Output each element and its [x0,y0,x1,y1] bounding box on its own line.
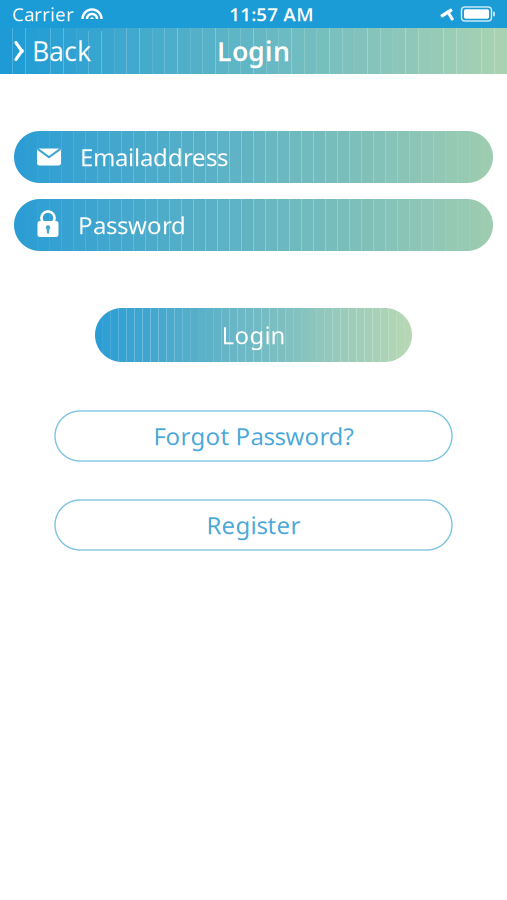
button[interactable]: Password [14,199,493,251]
staticText: Register [206,509,300,541]
staticText: Login [217,33,290,69]
staticText: Emailaddress [80,141,228,173]
staticText: 11:57 AM [229,2,313,26]
button[interactable]: Forgot Password? [55,411,452,461]
staticText: Forgot Password? [153,420,353,452]
staticText: Back [32,33,91,69]
staticText: Carrier [12,2,74,26]
button[interactable]: Register [55,500,452,550]
button[interactable]: Login [95,308,412,362]
button[interactable]: Back [0,28,103,74]
staticText: Password [78,209,186,241]
staticText: Login [221,319,285,351]
button[interactable]: Emailaddress [14,131,493,183]
